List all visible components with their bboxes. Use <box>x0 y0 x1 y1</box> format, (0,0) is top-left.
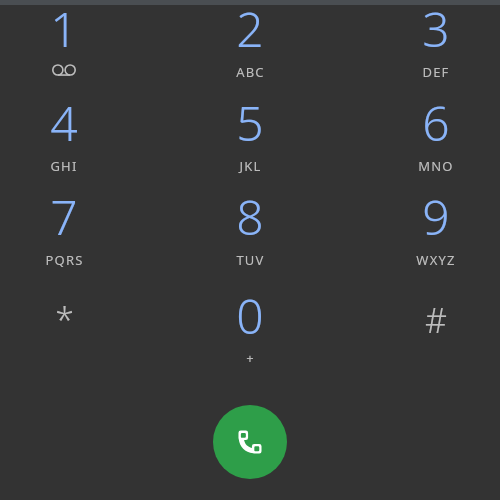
button[interactable]: * <box>0 283 139 377</box>
staticText: WXYZ <box>416 251 456 269</box>
staticText: ABC <box>236 63 265 81</box>
button[interactable]: 8 <box>175 184 325 278</box>
button[interactable]: 9 <box>361 184 500 278</box>
staticText: PQRS <box>45 251 84 269</box>
staticText: + <box>246 349 254 367</box>
button[interactable]: 2 <box>175 0 325 90</box>
staticText: TUV <box>236 251 265 269</box>
staticText: * <box>55 297 74 343</box>
staticText: 9 <box>422 184 450 249</box>
staticText: 4 <box>50 90 78 155</box>
button[interactable]: 4 <box>0 90 139 184</box>
staticText: 0 <box>236 283 264 348</box>
staticText: 8 <box>236 184 264 249</box>
staticText: 3 <box>422 0 450 61</box>
staticText: JKL <box>239 157 262 175</box>
button[interactable]: 7 <box>0 184 139 278</box>
staticText: 7 <box>50 184 78 249</box>
button[interactable]: 3 <box>361 0 500 90</box>
staticText: GHI <box>50 157 78 175</box>
staticText: 5 <box>236 90 264 155</box>
button[interactable]: Call <box>213 405 287 479</box>
staticText: # <box>425 297 447 343</box>
button[interactable]: 6 <box>361 90 500 184</box>
button[interactable]: 5 <box>175 90 325 184</box>
staticText: DEF <box>422 63 450 81</box>
button[interactable]: # <box>361 283 500 377</box>
staticText: MNO <box>418 157 454 175</box>
staticText: 2 <box>236 0 264 61</box>
staticText: 6 <box>422 90 450 155</box>
button[interactable]: 1 <box>0 0 139 90</box>
button[interactable]: 0 <box>175 283 325 377</box>
staticText: 1 <box>50 0 78 61</box>
